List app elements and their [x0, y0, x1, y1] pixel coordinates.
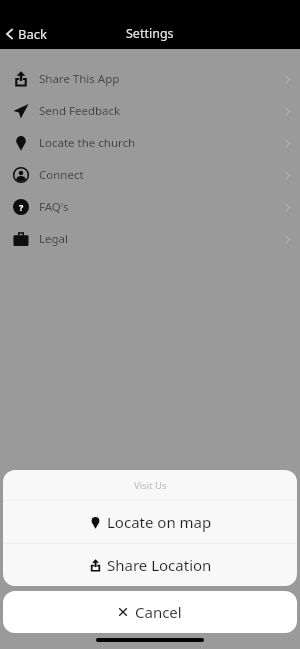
button[interactable]: Legal	[0, 223, 300, 255]
other: Connect	[13, 167, 29, 183]
button[interactable]: Cancel	[3, 591, 297, 633]
button[interactable]: Locate on map	[3, 501, 297, 543]
staticText: Legal	[39, 231, 283, 247]
staticText: Locate the church	[39, 135, 283, 151]
other: FAQ	[13, 199, 29, 215]
staticText: Settings	[126, 25, 174, 42]
staticText: Send Feedback	[39, 103, 283, 119]
other: Share location	[89, 559, 102, 572]
button[interactable]: Connect	[0, 159, 300, 191]
staticText: Back	[18, 25, 47, 43]
staticText: Cancel	[135, 602, 182, 622]
button[interactable]: Back	[4, 25, 47, 43]
staticText: Connect	[39, 167, 283, 183]
other: Locate	[13, 135, 29, 151]
staticText: Locate on map	[107, 512, 212, 532]
staticText: Share This App	[39, 71, 283, 87]
staticText: FAQ's	[39, 199, 283, 215]
button[interactable]: Share location	[3, 544, 297, 586]
button[interactable]: Share this app	[0, 63, 300, 95]
button[interactable]: FAQ	[0, 191, 300, 223]
button[interactable]: Locate	[0, 127, 300, 159]
button[interactable]: Send feedback	[0, 95, 300, 127]
other: Locate on map	[89, 516, 102, 529]
other: Legal	[13, 231, 29, 247]
staticText: ?	[19, 201, 24, 213]
staticText: Share Location	[107, 555, 212, 575]
other: Send feedback	[13, 103, 29, 119]
other: Share this app	[13, 71, 29, 87]
staticText: Visit Us	[134, 479, 167, 492]
